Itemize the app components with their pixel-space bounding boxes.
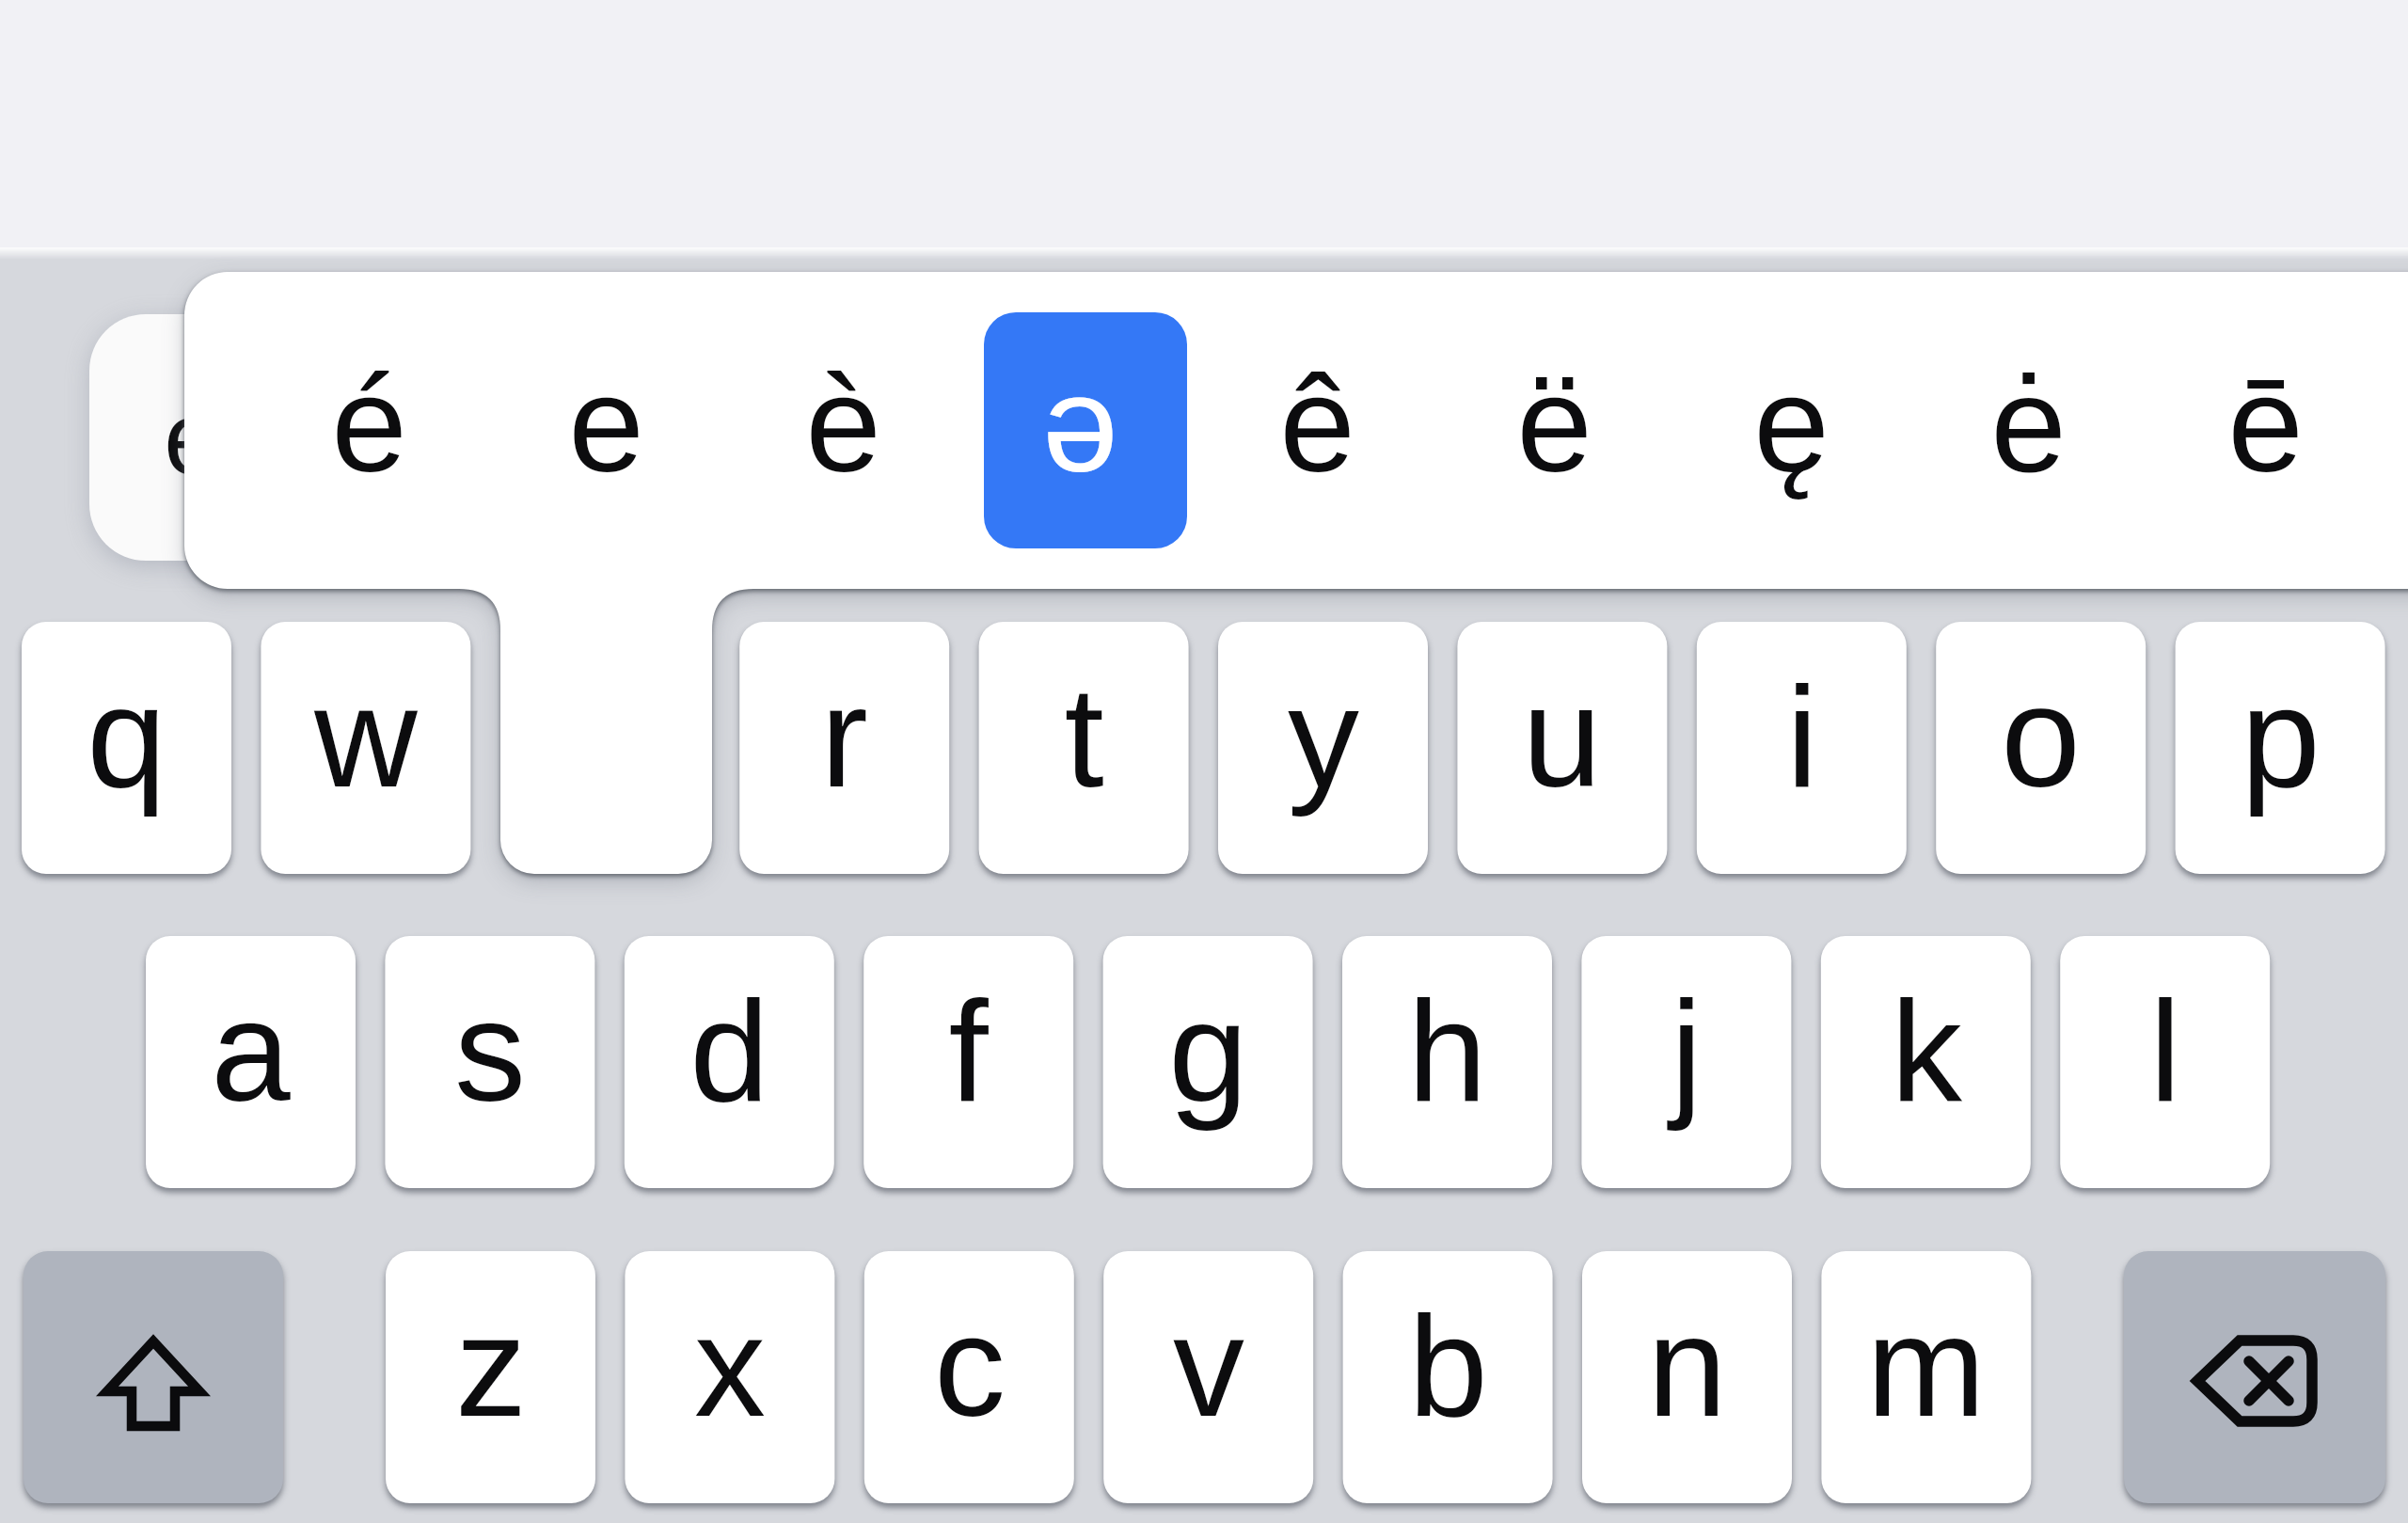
- staticText: b: [1408, 1286, 1488, 1446]
- staticText: a: [211, 971, 291, 1131]
- button[interactable]: u: [1457, 622, 1667, 874]
- staticText: è: [805, 348, 881, 500]
- button[interactable]: k: [1821, 936, 2031, 1188]
- staticText: f: [948, 971, 989, 1131]
- staticText: n: [1647, 1286, 1727, 1446]
- staticText: h: [1407, 971, 1487, 1131]
- staticText: r: [820, 657, 868, 817]
- button[interactable]: x: [625, 1251, 834, 1503]
- staticText: g: [1168, 971, 1248, 1131]
- staticText: z: [455, 1286, 527, 1446]
- button[interactable]: p: [2176, 622, 2385, 874]
- staticText: o: [2001, 657, 2081, 817]
- button[interactable]: a: [146, 936, 356, 1188]
- staticText: x: [694, 1286, 766, 1446]
- button[interactable]: r: [739, 622, 949, 874]
- button[interactable]: c: [864, 1251, 1074, 1503]
- button[interactable]: Shift: [24, 1251, 283, 1503]
- staticText: p: [2241, 657, 2321, 817]
- button[interactable]: q: [22, 622, 231, 874]
- button[interactable]: ē: [2147, 272, 2384, 589]
- staticText: ë: [1516, 348, 1592, 500]
- staticText: c: [934, 1286, 1006, 1446]
- button[interactable]: w: [261, 622, 470, 874]
- staticText: ê: [1279, 348, 1355, 500]
- button[interactable]: b: [1343, 1251, 1553, 1503]
- staticText: t: [1064, 657, 1104, 817]
- button[interactable]: v: [1103, 1251, 1313, 1503]
- staticText: i: [1786, 657, 1818, 817]
- button[interactable]: ə: [961, 272, 1198, 589]
- button[interactable]: e: [487, 272, 724, 589]
- button[interactable]: y: [1218, 622, 1428, 874]
- button[interactable]: j: [1581, 936, 1791, 1188]
- staticText: ə: [1042, 348, 1118, 500]
- staticText: e: [568, 348, 644, 500]
- button[interactable]: ê: [1198, 272, 1435, 589]
- staticText: s: [454, 971, 526, 1131]
- staticText: q: [87, 657, 166, 817]
- staticText: ę: [1753, 348, 1830, 500]
- button[interactable]: l: [2060, 936, 2270, 1188]
- button[interactable]: s: [385, 936, 594, 1188]
- staticText: u: [1522, 657, 1602, 817]
- staticText: é: [331, 348, 407, 500]
- button[interactable]: o: [1936, 622, 2146, 874]
- staticText: v: [1173, 1286, 1244, 1446]
- button[interactable]: è: [724, 272, 961, 589]
- staticText: l: [2149, 971, 2181, 1131]
- button[interactable]: g: [1103, 936, 1313, 1188]
- button[interactable]: t: [979, 622, 1189, 874]
- button[interactable]: i: [1697, 622, 1907, 874]
- button[interactable]: é: [250, 272, 487, 589]
- button[interactable]: n: [1582, 1251, 1792, 1503]
- button[interactable]: ę: [1672, 272, 1909, 589]
- staticText: j: [1671, 971, 1703, 1131]
- button[interactable]: h: [1342, 936, 1552, 1188]
- staticText: w: [314, 657, 418, 817]
- staticText: m: [1866, 1286, 1986, 1446]
- button[interactable]: ë: [1435, 272, 1672, 589]
- button[interactable]: Backspace: [2124, 1251, 2385, 1503]
- button[interactable]: f: [863, 936, 1073, 1188]
- staticText: y: [1288, 657, 1359, 817]
- staticText: k: [1891, 971, 1962, 1131]
- staticText: d: [689, 971, 769, 1131]
- staticText: ē: [2227, 348, 2304, 500]
- button[interactable]: d: [625, 936, 834, 1188]
- button[interactable]: m: [1821, 1251, 2031, 1503]
- button[interactable]: ė: [1909, 272, 2147, 589]
- button[interactable]: z: [386, 1251, 595, 1503]
- staticText: ė: [1990, 348, 2067, 500]
